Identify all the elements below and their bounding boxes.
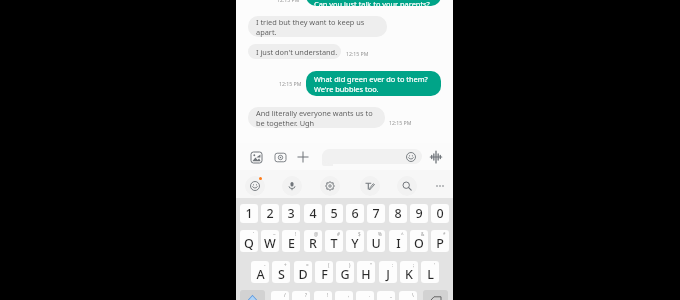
staticText: _ [390,292,392,298]
staticText: 7 [372,205,380,222]
staticText: . [369,292,371,298]
button[interactable]: 7 [367,204,385,223]
button[interactable]: O [410,230,428,252]
staticText: 9 [415,205,423,222]
staticText: A [256,266,265,283]
staticText: 8 [394,205,402,222]
staticText: 12:15 PM [277,0,300,3]
staticText: % [378,231,382,237]
staticText: R [309,235,317,252]
button[interactable]: I just don't understand. [248,44,341,59]
staticText: J [386,266,390,283]
button[interactable]: Add [293,147,313,167]
staticText: ) [349,262,351,268]
staticText: / [284,292,286,298]
staticText: E [288,235,295,252]
button[interactable]: 3 [282,204,300,223]
button[interactable]: 9 [410,204,428,223]
button[interactable]: What did green ever do to them? We're bu… [306,71,441,96]
button[interactable]: Emoji [245,176,265,196]
button[interactable]: Camera [270,147,290,167]
staticText: ; [413,262,415,268]
staticText: : [392,262,394,268]
button[interactable]: X [292,291,310,300]
button[interactable]: 5 [325,204,343,223]
staticText: # [337,231,340,237]
button[interactable]: Gallery [246,147,266,167]
button[interactable]: H [357,261,375,283]
button[interactable]: Z [271,291,289,300]
button[interactable]: G [336,261,354,283]
staticText: + [284,262,287,268]
button[interactable]: 1 [240,204,258,223]
button[interactable]: T [325,230,343,252]
staticText: L [427,266,434,283]
button[interactable]: A [251,261,269,283]
button[interactable]: And literally everyone wants us to be to… [248,107,385,128]
staticText: $ [358,231,361,237]
staticText: " [370,262,372,268]
button[interactable]: 0 [431,204,449,223]
staticText: T [330,235,338,252]
button[interactable]: S [272,261,290,283]
staticText: D [298,266,308,283]
staticText: * [443,231,446,237]
button[interactable]: Backspace [423,290,448,300]
staticText: G [340,266,350,283]
button[interactable]: I tried but they want to keep us apart. [248,16,387,37]
staticText: H [361,266,371,283]
button[interactable]: Y [346,230,364,252]
button[interactable]: 6 [346,204,364,223]
button[interactable]: P [431,230,449,252]
button[interactable]: Search [397,176,417,196]
staticText: 2 [266,205,274,222]
staticText: 12:15 PM [389,119,412,126]
button[interactable]: K [400,261,418,283]
button[interactable]: Emoji [401,147,421,167]
button[interactable]: Q [240,230,258,252]
staticText: = [306,262,309,268]
button[interactable]: Handwriting [360,176,380,196]
staticText: 6 [351,205,359,222]
button[interactable]: D [294,261,312,283]
staticText: 5 [330,205,338,222]
button[interactable]: W [261,230,279,252]
staticText: Q [244,235,254,252]
staticText: What did green ever do to them? We're bu… [314,74,428,94]
staticText: U [371,235,381,252]
staticText: W [264,235,276,252]
staticText: F [321,266,328,283]
staticText: 4 [309,205,317,222]
button[interactable]: N [377,291,395,300]
button[interactable]: More options [430,176,450,196]
button[interactable]: Voice message [426,147,446,167]
button[interactable]: Shift [240,290,265,300]
staticText: , [348,292,350,298]
button[interactable]: 2 [261,204,279,223]
button[interactable]: Settings [320,176,340,196]
button[interactable]: E [282,230,300,252]
staticText: K [405,266,413,283]
button[interactable]: C [314,291,332,300]
button[interactable]: 8 [389,204,407,223]
staticText: B [361,296,370,300]
staticText: ` [253,231,255,237]
staticText: ? [305,292,307,298]
button[interactable]: U [367,230,385,252]
staticText: 0 [436,205,444,222]
button[interactable] [322,149,422,164]
button[interactable]: L [421,261,439,283]
staticText: M [402,296,414,300]
button[interactable]: R [304,230,322,252]
staticText: ( [328,262,330,268]
button[interactable]: M [399,291,417,300]
button[interactable]: V [335,291,353,300]
staticText: Y [351,235,359,252]
button[interactable]: I [389,230,407,252]
button[interactable]: 4 [304,204,322,223]
button[interactable]: Microphone [282,176,302,196]
button[interactable]: J [379,261,397,283]
button[interactable]: B [356,291,374,300]
button[interactable]: F [315,261,333,283]
